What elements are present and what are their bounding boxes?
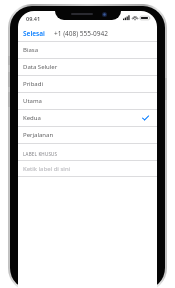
- staticText: Ketik label di sini: [23, 165, 71, 173]
- button[interactable]: Utama: [18, 93, 157, 109]
- other: Selected: [142, 115, 149, 121]
- staticText: Pribadi: [23, 80, 43, 88]
- staticText: Selesai: [23, 29, 45, 38]
- button[interactable]: Ketik label di sini: [18, 161, 157, 176]
- button[interactable]: Pribadi: [18, 76, 157, 92]
- staticText: Perjalanan: [23, 131, 54, 139]
- staticText: Kedua: [23, 114, 41, 122]
- staticText: Biasa: [23, 46, 39, 54]
- staticText: LABEL KHUSUS: [23, 151, 58, 157]
- staticText: +1 (408) 555-0942: [54, 29, 108, 38]
- button[interactable]: Data Seluler: [18, 59, 157, 75]
- button[interactable]: Biasa: [18, 42, 157, 58]
- staticText: 09.41: [26, 15, 41, 22]
- button[interactable]: Kedua: [18, 110, 157, 126]
- button[interactable]: Selesai: [22, 27, 46, 40]
- staticText: Data Seluler: [23, 63, 58, 71]
- button[interactable]: Perjalanan: [18, 127, 157, 143]
- staticText: Utama: [23, 97, 42, 105]
